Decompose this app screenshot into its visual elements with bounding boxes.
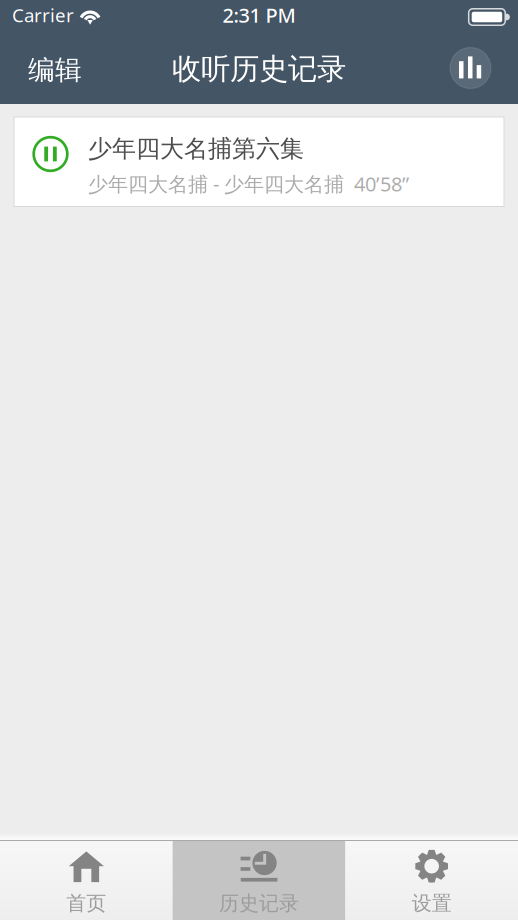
staticText: 设置 (412, 891, 452, 916)
staticText: 收听历史记录 (172, 51, 346, 87)
staticText: 历史记录 (219, 891, 299, 916)
staticText: 首页 (66, 891, 106, 916)
staticText: 2:31 PM (222, 2, 295, 28)
button[interactable]: 首页 (0, 841, 173, 920)
staticText: 少年四大名捕第六集 (88, 134, 304, 163)
button[interactable]: Statistics (450, 47, 518, 88)
staticText: Carrier (12, 3, 74, 27)
button[interactable]: 设置 (345, 841, 518, 920)
staticText: 编辑 (28, 54, 82, 86)
button[interactable]: 少年四大名捕第六集 (14, 117, 504, 206)
staticText: 少年四大名捕 - 少年四大名捕 40’58” (88, 170, 409, 197)
button[interactable]: 历史记录 (173, 841, 345, 920)
button[interactable]: 编辑 (0, 40, 98, 96)
